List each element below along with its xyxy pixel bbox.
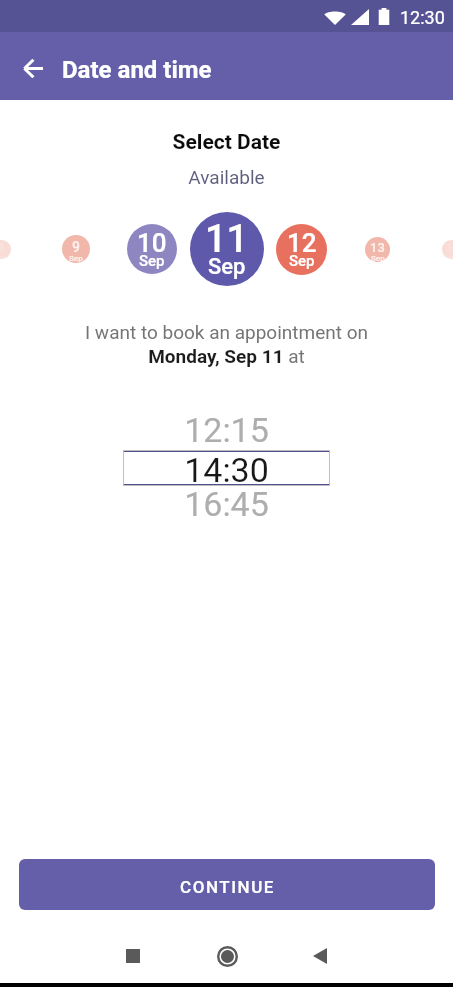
staticText: 11 [205,217,249,262]
staticText: 12 [287,228,317,258]
button[interactable]: 10 [127,224,177,274]
staticText: Monday, Sep 11 at [0,345,453,367]
staticText: 10 [137,228,167,258]
staticText: Date and time [62,56,212,84]
staticText: Sep [69,254,83,263]
staticText: Sep [371,254,385,262]
staticText: Sep [289,252,315,270]
staticText: 13 [370,240,385,255]
staticText: 14:30 [184,450,269,486]
button[interactable]: 8 [0,240,11,259]
button[interactable]: Recent apps [111,934,155,978]
staticText: 12:30 [400,7,445,28]
button[interactable]: 9 [62,235,90,263]
staticText: 12:15 [0,410,453,450]
staticText: Sep [208,254,246,280]
staticText: 9 [72,239,80,255]
staticText: 16:45 [0,484,453,524]
button[interactable]: Back [298,934,342,978]
staticText: Sep [139,252,165,270]
button[interactable]: 12 [276,224,327,275]
button[interactable]: CONTINUE [19,859,435,910]
button[interactable]: 14 [442,240,453,259]
button[interactable]: 14:30 [123,450,330,486]
staticText: Available [0,166,453,188]
staticText: Sep [0,253,7,259]
button[interactable]: Back [11,47,54,90]
button[interactable]: 13 [365,237,390,262]
staticText: I want to book an appointment on [0,321,453,343]
staticText: Sep [446,253,453,259]
staticText: CONTINUE [180,877,275,897]
staticText: Select Date [0,130,453,155]
staticText: 8 [0,242,5,254]
button[interactable]: Home [205,934,249,978]
button[interactable]: 11 [190,212,264,286]
